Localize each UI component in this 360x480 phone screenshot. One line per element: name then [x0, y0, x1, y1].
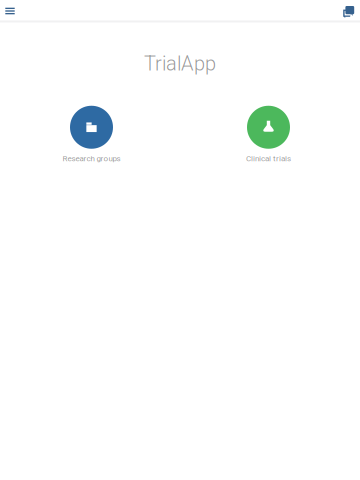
staticText: TrialApp: [144, 52, 216, 75]
button[interactable]: Messages: [340, 0, 357, 21]
button[interactable]: Clinical trials: [208, 100, 328, 168]
staticText: Research groups: [62, 154, 120, 163]
button[interactable]: Research groups: [31, 100, 151, 168]
button[interactable]: Menu: [0, 0, 20, 21]
staticText: Clinical trials: [246, 154, 291, 163]
